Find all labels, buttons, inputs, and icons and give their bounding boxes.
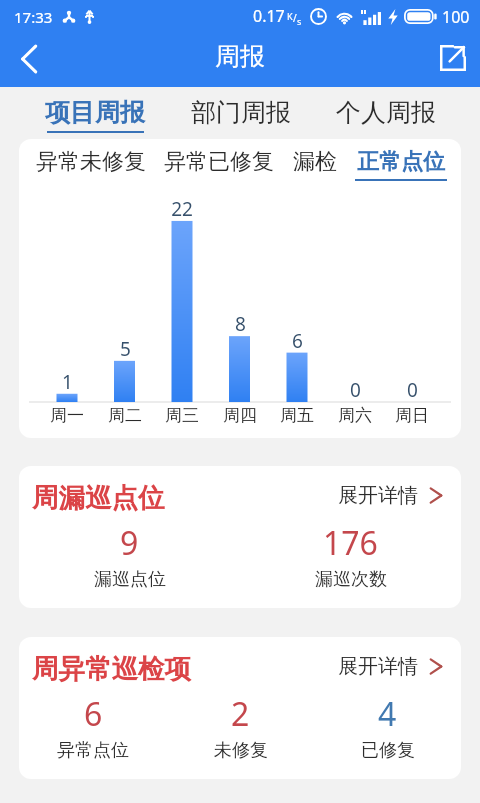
staticText: 17:33 [14,7,53,27]
staticText: 周报 [215,41,265,72]
button[interactable]: 漏检 [293,148,337,181]
staticText: 未修复 [214,739,268,762]
staticText: 周一 [50,405,84,426]
staticText: 1 [62,369,73,395]
button[interactable]: 9 [19,521,240,605]
button[interactable]: 正常点位 [355,148,447,181]
button[interactable]: 项目周报 [22,87,168,139]
staticText: 项目周报 [45,97,145,128]
button[interactable]: 2 [167,692,314,776]
button[interactable]: 异常已修复 [164,148,274,181]
staticText: / [293,11,297,25]
staticText: 异常点位 [57,739,129,762]
staticText: 周四 [223,405,257,426]
staticText: 8 [235,311,246,337]
staticText: K [287,10,293,22]
button[interactable]: 异常未修复 [36,148,146,181]
staticText: 4 [378,692,397,736]
button[interactable]: 4 [314,692,461,776]
button[interactable]: 部门周报 [168,87,313,139]
staticText: 0 [407,377,418,403]
button[interactable]: Back [2,32,56,86]
staticText: 0 [350,377,361,403]
staticText: 5 [120,336,131,362]
staticText: 100 [442,6,470,28]
button[interactable]: 展开详情 [338,654,443,679]
button[interactable]: Share [426,31,480,85]
staticText: 周六 [338,405,372,426]
staticText: 漏巡点位 [94,568,166,591]
staticText: 正常点位 [357,148,445,176]
staticText: 2 [231,692,250,736]
staticText: s [297,15,302,27]
staticText: 漏检 [293,148,337,176]
staticText: 6 [84,692,103,736]
staticText: 周日 [395,405,429,426]
staticText: 周异常巡检项 [32,652,191,685]
staticText: 已修复 [361,739,415,762]
staticText: 部门周报 [191,97,291,128]
staticText: 周三 [165,405,199,426]
button[interactable]: 个人周报 [313,87,458,139]
staticText: 0.17 [253,5,285,27]
staticText: 22 [171,196,193,222]
staticText: 展开详情 [338,654,418,679]
button[interactable]: 展开详情 [338,483,443,508]
staticText: 个人周报 [336,97,436,128]
staticText: 异常未修复 [36,148,146,176]
staticText: 周漏巡点位 [32,481,165,514]
staticText: 周五 [280,405,314,426]
staticText: 176 [323,521,378,565]
staticText: 9 [120,521,139,565]
staticText: 周二 [108,405,142,426]
button[interactable]: 176 [240,521,461,605]
staticText: 漏巡次数 [315,568,387,591]
staticText: 6 [292,328,303,354]
staticText: 展开详情 [338,483,418,508]
staticText: 异常已修复 [164,148,274,176]
button[interactable]: 6 [19,692,167,776]
